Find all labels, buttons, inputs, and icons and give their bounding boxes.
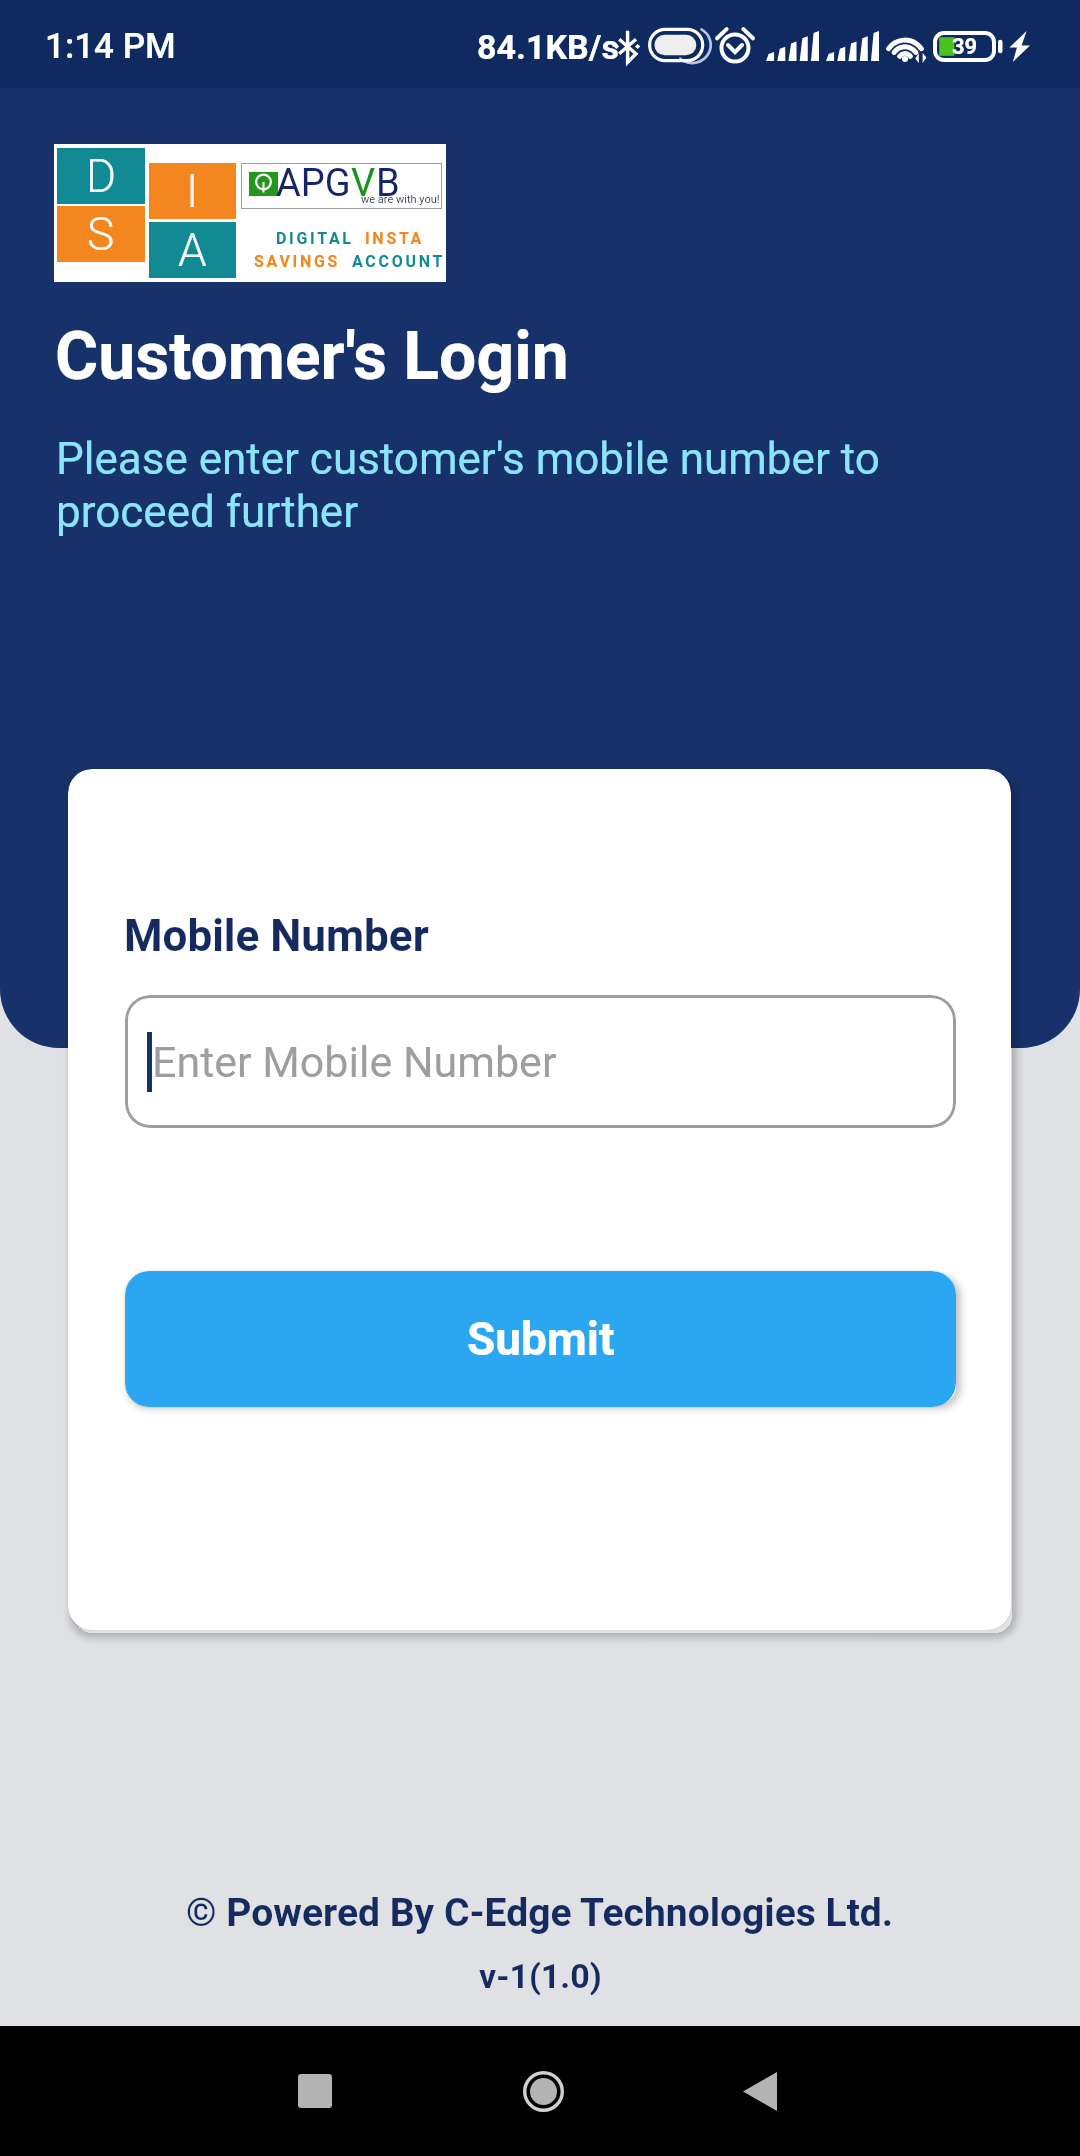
staticText: Customer's Login: [55, 318, 569, 395]
staticText: SAVINGS: [254, 252, 341, 271]
button[interactable]: Back: [700, 2051, 820, 2131]
staticText: Mobile Number: [124, 910, 429, 962]
button[interactable]: Home: [483, 2051, 603, 2131]
staticText: I: [186, 164, 199, 218]
staticText: © Powered By C-Edge Technologies Ltd.: [186, 1890, 894, 1936]
staticText: ACCOUNT: [352, 252, 446, 271]
staticText: 39: [952, 34, 978, 60]
button[interactable]: Submit: [125, 1271, 956, 1407]
staticText: we are with you!: [361, 193, 440, 206]
button[interactable]: Enter Mobile Number: [125, 995, 956, 1128]
staticText: APG: [276, 161, 351, 206]
staticText: B: [376, 161, 400, 206]
staticText: D: [86, 149, 117, 203]
staticText: A: [178, 223, 207, 277]
staticText: V: [351, 161, 376, 206]
staticText: INSTA: [365, 229, 425, 248]
staticText: DIGITAL: [276, 229, 354, 248]
button[interactable]: Recent apps: [255, 2051, 375, 2131]
staticText: v-1(1.0): [479, 1956, 602, 1996]
staticText: S: [87, 207, 115, 261]
staticText: Please enter customer's mobile number to…: [56, 433, 936, 538]
staticText: Submit: [467, 1312, 615, 1366]
staticText: 1:14 PM: [45, 26, 176, 67]
staticText: Enter Mobile Number: [152, 1037, 557, 1087]
staticText: 84.1KB/s: [477, 27, 619, 67]
